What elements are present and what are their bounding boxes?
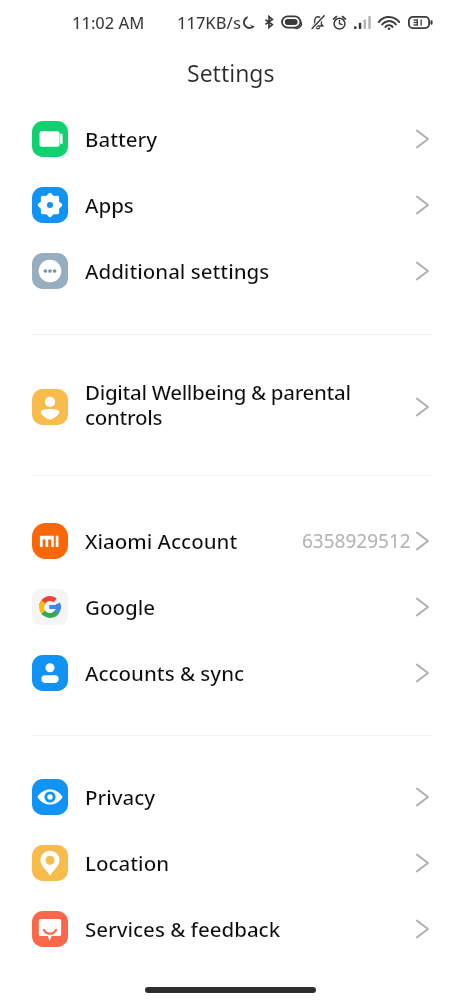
staticText: Additional settings <box>85 257 416 285</box>
button[interactable]: Digital Wellbeing & parental controls <box>0 368 461 446</box>
staticText: Digital Wellbeing & parental controls <box>85 378 416 431</box>
button[interactable]: Google <box>0 574 461 640</box>
button[interactable]: Location <box>0 830 461 896</box>
staticText: Location <box>85 849 416 877</box>
button[interactable]: Additional settings <box>0 238 461 304</box>
staticText: 6358929512 <box>302 528 411 554</box>
staticText: Privacy <box>85 783 416 811</box>
button[interactable]: Battery <box>0 106 461 172</box>
staticText: Apps <box>85 191 416 219</box>
staticText: Xiaomi Account <box>85 527 302 555</box>
button[interactable]: Apps <box>0 172 461 238</box>
button[interactable]: Privacy <box>0 764 461 830</box>
button[interactable]: Accounts & sync <box>0 640 461 706</box>
staticText: Services & feedback <box>85 915 416 943</box>
staticText: 117KB/s <box>177 11 241 33</box>
staticText: Google <box>85 593 416 621</box>
staticText: Battery <box>85 125 416 153</box>
staticText: Settings <box>187 57 275 88</box>
staticText: Accounts & sync <box>85 659 416 687</box>
button[interactable]: Xiaomi Account <box>0 508 461 574</box>
button[interactable]: Services & feedback <box>0 896 461 962</box>
staticText: 11:02 AM <box>72 11 145 33</box>
